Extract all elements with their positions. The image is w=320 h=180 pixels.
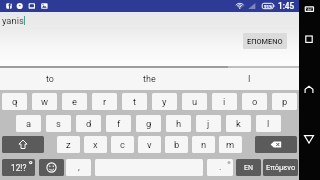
button[interactable]: Home [303,83,316,96]
button[interactable]: g [136,115,161,132]
staticText: x [93,139,98,150]
staticText: . [219,162,222,173]
button[interactable]: x [84,136,107,153]
staticText: i [223,96,226,107]
button[interactable]: y [152,93,177,110]
staticText: to [46,74,54,85]
button[interactable]: o [242,93,267,110]
button[interactable]: Shift [2,136,44,153]
staticText: t [133,96,137,107]
button[interactable]: q [2,93,27,110]
button[interactable]: s [46,115,71,132]
button[interactable]: l [256,115,281,132]
button[interactable]: to [0,68,99,90]
button[interactable]: d [76,115,101,132]
staticText: s [56,118,61,129]
staticText: u [192,96,198,107]
button[interactable]: a [16,115,41,132]
staticText: j [207,118,210,129]
button[interactable]: ΕΠΟΜΕΝΟ [243,33,287,49]
button[interactable]: u [182,93,207,110]
button[interactable]: Backspace [255,136,297,153]
staticText: , [78,162,80,173]
staticText: g [146,118,152,129]
button[interactable]: the [99,68,199,90]
button[interactable]: z [57,136,80,153]
staticText: 1:45 [278,1,295,11]
button[interactable]: k [226,115,251,132]
staticText: EN [244,164,253,172]
button[interactable]: f [106,115,131,132]
button[interactable]: b [165,136,188,153]
button[interactable]: Back [303,132,316,145]
staticText: yanis [2,15,24,26]
staticText: the [143,74,156,85]
button[interactable]: j [196,115,221,132]
staticText: k [236,118,241,129]
button[interactable]: m [219,136,242,153]
button[interactable]: c [111,136,134,153]
staticText: c [120,139,125,150]
staticText: r [103,96,107,107]
button[interactable]: h [166,115,191,132]
button[interactable]: , [66,159,91,176]
staticText: I [248,74,251,85]
button[interactable]: Επόμενο [263,159,298,176]
staticText: b [174,139,180,150]
staticText: Επόμενο [266,163,296,172]
staticText: y [162,96,167,107]
button[interactable]: Symbols [2,159,35,176]
staticText: z [66,139,71,150]
button[interactable]: w [32,93,57,110]
staticText: l [267,118,270,129]
button[interactable]: n [192,136,215,153]
staticText: w [41,96,49,107]
button[interactable]: v [138,136,161,153]
button[interactable]: Hide keyboard [304,5,315,14]
staticText: a [26,118,32,129]
staticText: p [282,96,288,107]
staticText: d [86,118,92,129]
button[interactable]: e [62,93,87,110]
staticText: q [12,96,18,107]
button[interactable]: Recent apps [303,33,316,46]
staticText: n [201,139,207,150]
button[interactable]: Period [207,159,233,176]
staticText: ΕΠΟΜΕΝΟ [247,37,283,46]
staticText: o [252,96,258,107]
button[interactable]: Emoji [39,159,64,176]
staticText: f [117,118,121,129]
staticText: e [72,96,77,107]
staticText: v [147,139,152,150]
staticText: 12!? [11,163,27,173]
staticText: 91% [264,4,273,9]
button[interactable]: r [92,93,117,110]
button[interactable]: p [272,93,297,110]
staticText: m [226,139,235,150]
button[interactable]: t [122,93,147,110]
staticText: h [176,118,182,129]
button[interactable]: i [212,93,237,110]
button[interactable]: I [199,68,299,90]
button[interactable]: EN [236,159,261,176]
